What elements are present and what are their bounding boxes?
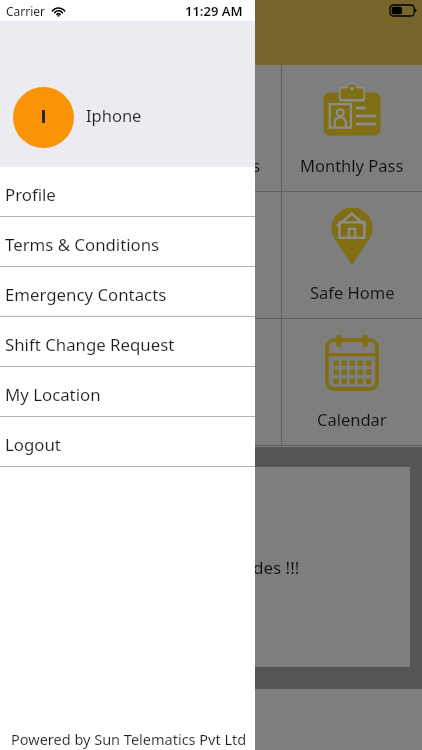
staticText: No Scheduled Rides !!! (123, 556, 300, 579)
button[interactable]: Emergency Contacts (0, 267, 255, 317)
staticText: Track Bus (33, 154, 107, 176)
staticText: Iphone (86, 104, 142, 126)
staticText: Powered by Sun Telematics Pvt Ltd (11, 729, 247, 749)
button[interactable]: Track Bus (0, 65, 140, 191)
staticText: Monthly Pass (300, 154, 404, 176)
button[interactable]: Notifications (141, 65, 281, 191)
staticText: My Location (5, 383, 101, 406)
button[interactable]: Feedback (141, 319, 281, 445)
staticText: Calendar (317, 408, 387, 430)
staticText: 11:29 AM (185, 2, 243, 20)
button[interactable]: Terms & Conditions (0, 217, 255, 267)
button[interactable]: Monthly Pass (282, 65, 422, 191)
staticText: Notifications (162, 154, 261, 176)
staticText: Profile (5, 183, 56, 206)
staticText: Call Driver (30, 408, 111, 430)
button[interactable]: Profile (0, 167, 255, 217)
other: Battery (390, 5, 417, 16)
staticText: Feedback (174, 408, 248, 430)
staticText: Logout (5, 433, 61, 456)
staticText: Carrier (6, 3, 46, 19)
button[interactable]: Emergency (0, 192, 140, 318)
staticText: Terms & Conditions (5, 233, 160, 256)
staticText: Emergency Contacts (5, 283, 167, 306)
staticText: Safe Home (310, 281, 395, 303)
button[interactable]: Trip Status (141, 192, 281, 318)
button[interactable]: Call Driver (0, 319, 140, 445)
button[interactable]: Shift Change Request (0, 317, 255, 367)
staticText: Emergency (27, 281, 114, 303)
staticText: Shift Change Request (5, 333, 175, 356)
button[interactable]: Logout (0, 417, 255, 467)
button[interactable]: Calendar (282, 319, 422, 445)
button[interactable]: Safe Home (282, 192, 422, 318)
button[interactable]: My Location (0, 367, 255, 417)
button[interactable]: Profile picture (13, 87, 74, 148)
